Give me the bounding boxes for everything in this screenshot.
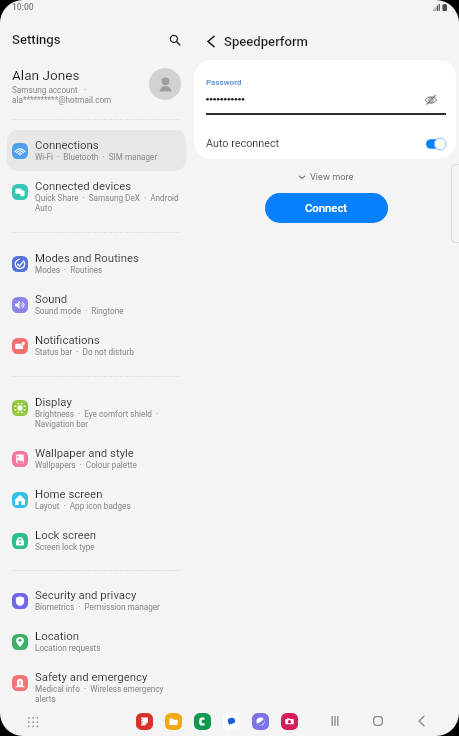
button[interactable]: Camera xyxy=(281,713,298,730)
button[interactable]: Messages xyxy=(223,713,240,730)
button[interactable]: Recents xyxy=(323,709,347,733)
button[interactable]: Internet xyxy=(252,713,269,730)
button[interactable]: Lock screen xyxy=(7,520,186,561)
staticText: Sound mode · Ringtone xyxy=(35,306,124,316)
button[interactable]: Connected devices xyxy=(7,171,186,222)
button[interactable]: Modes and Routines xyxy=(7,243,186,284)
staticText: Status bar · Do not disturb xyxy=(35,347,134,357)
button[interactable]: Connections xyxy=(7,130,186,171)
staticText: Connections xyxy=(35,138,99,151)
button[interactable]: All apps xyxy=(22,711,43,732)
button[interactable]: Location xyxy=(7,621,186,662)
button[interactable]: Show password xyxy=(423,95,439,105)
staticText: Location requests xyxy=(35,643,101,653)
button[interactable]: Connect xyxy=(265,193,388,223)
button[interactable]: View more xyxy=(292,169,360,184)
staticText: Alan Jones xyxy=(12,67,80,83)
staticText: Sound xyxy=(35,292,68,305)
button[interactable]: Safety and emergency xyxy=(7,662,186,713)
staticText: Biometrics · Permission manager xyxy=(35,602,160,612)
button[interactable]: Home xyxy=(366,709,390,733)
button[interactable]: Home screen xyxy=(7,479,186,520)
button[interactable]: Wallpaper and style xyxy=(7,438,186,479)
button[interactable]: Alan Jones xyxy=(0,56,193,113)
staticText: Medical info · Wireless emergency alerts xyxy=(35,684,180,704)
button[interactable]: Notifications xyxy=(7,325,186,366)
staticText: ala**********@hotmail.com xyxy=(12,95,112,105)
staticText: Modes · Routines xyxy=(35,265,103,275)
button[interactable]: Back xyxy=(200,30,222,52)
button[interactable]: Sound xyxy=(7,284,186,325)
button[interactable]: Auto reconnect xyxy=(206,137,446,150)
staticText: Wallpaper and style xyxy=(35,446,134,459)
staticText: Auto reconnect xyxy=(206,137,426,150)
staticText: Speedperform xyxy=(224,34,308,49)
staticText: Connected devices xyxy=(35,179,132,192)
button[interactable]: Samsung Notes xyxy=(136,713,153,730)
staticText: Settings xyxy=(12,32,61,47)
staticText: Lock screen xyxy=(35,528,97,541)
staticText: Wallpapers · Colour palette xyxy=(35,460,137,470)
button[interactable]: Search xyxy=(164,29,186,51)
staticText: Quick Share · Samsung DeX · Android Auto xyxy=(35,193,180,213)
staticText: Notifications xyxy=(35,333,100,346)
staticText: Location xyxy=(35,629,80,642)
staticText: Security and privacy xyxy=(35,588,137,601)
staticText: Samsung account · xyxy=(12,85,87,95)
button[interactable]: My Files xyxy=(165,713,182,730)
staticText: Home screen xyxy=(35,487,103,500)
staticText: Wi-Fi · Bluetooth · SIM manager xyxy=(35,152,158,162)
button[interactable]: Display xyxy=(7,387,186,438)
staticText: Brightness · Eye comfort shield · Naviga… xyxy=(35,409,180,429)
staticText: Connect xyxy=(305,202,348,215)
staticText: Safety and emergency xyxy=(35,670,148,683)
button[interactable]: Phone xyxy=(194,713,211,730)
staticText: Screen lock type xyxy=(35,542,95,552)
staticText: Layout · App icon badges xyxy=(35,501,131,511)
staticText: View more xyxy=(310,171,354,182)
button[interactable]: Security and privacy xyxy=(7,580,186,621)
button[interactable]: Back xyxy=(409,709,433,733)
staticText: 10:00 xyxy=(12,2,34,12)
staticText: Display xyxy=(35,395,72,408)
staticText: Password xyxy=(206,78,242,87)
staticText: Modes and Routines xyxy=(35,251,139,264)
